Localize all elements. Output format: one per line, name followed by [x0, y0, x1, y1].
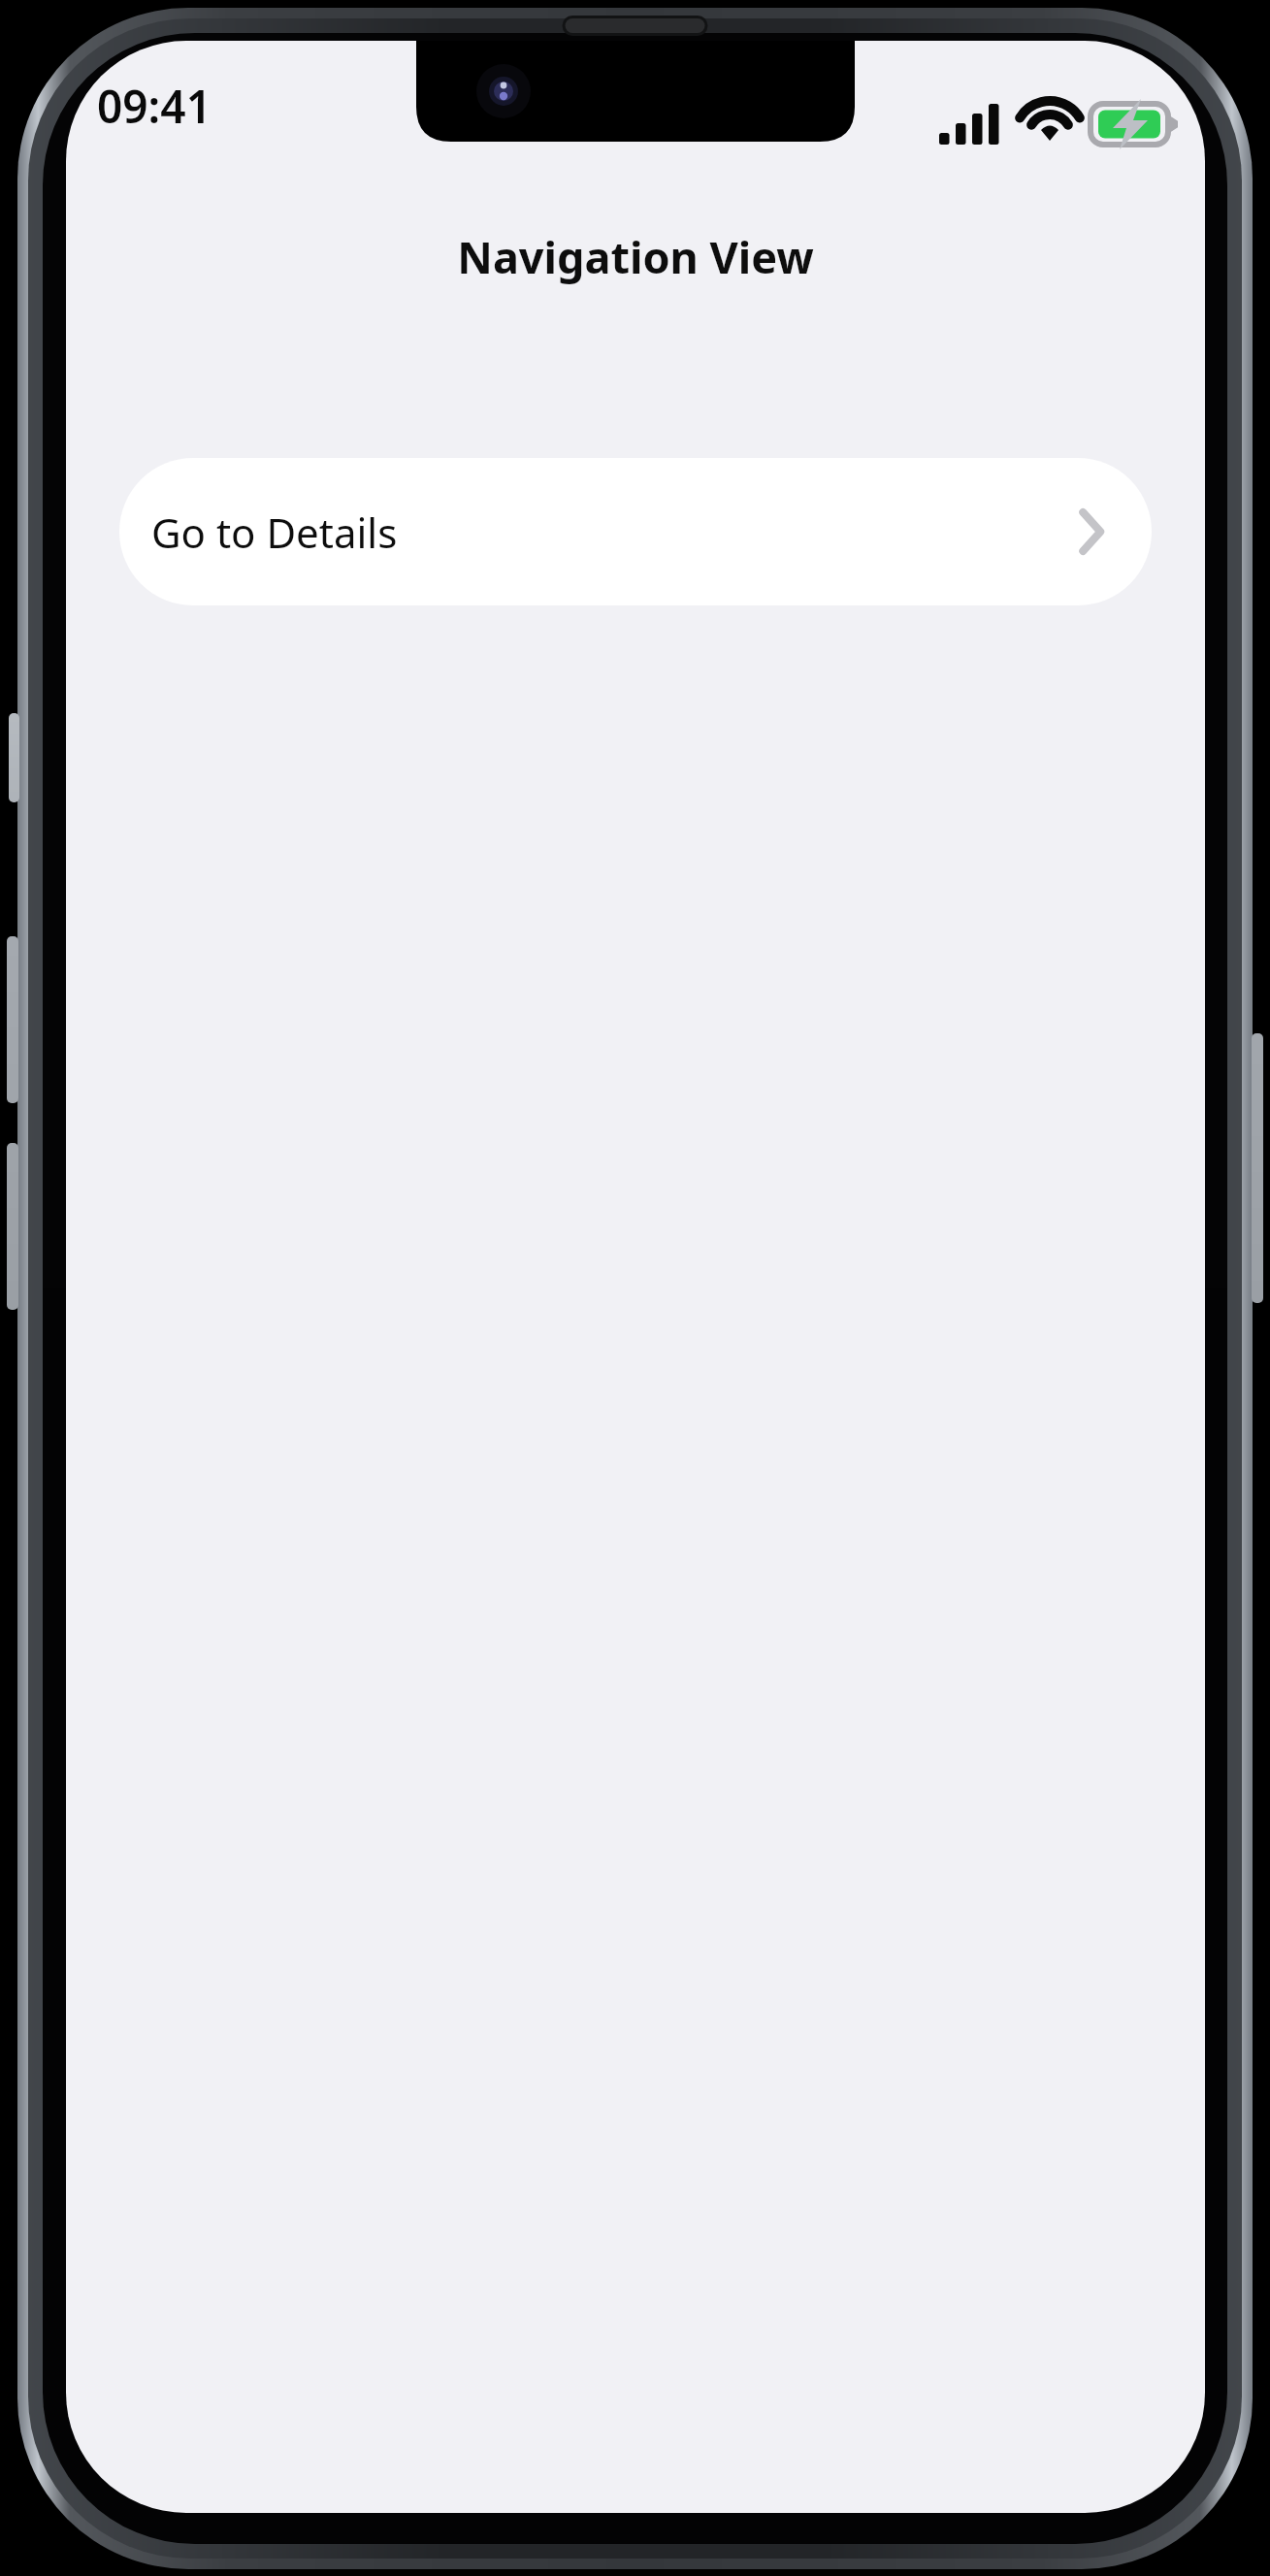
- other: Go to Details: [1074, 506, 1113, 557]
- staticText: 09:41: [97, 76, 212, 137]
- staticText: Navigation View: [457, 227, 814, 286]
- button[interactable]: Go to Details: [119, 458, 1152, 605]
- staticText: Go to Details: [151, 505, 1074, 560]
